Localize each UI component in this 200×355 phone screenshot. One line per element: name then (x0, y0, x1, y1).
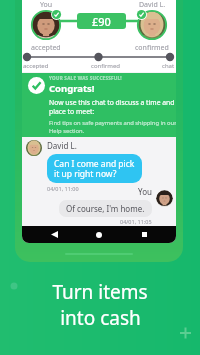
staticText: Turn items (52, 279, 148, 305)
staticText: chat (162, 62, 175, 70)
staticText: You (138, 186, 152, 197)
staticText: Congrats! (49, 82, 95, 95)
staticText: You (40, 0, 53, 10)
staticText: accepted (23, 62, 49, 70)
button[interactable]: Of course, I'm home. (66, 203, 145, 214)
button[interactable]: £90 (77, 13, 126, 29)
staticText: YOUR SALE WAS SUCCESSFUL! (49, 75, 122, 81)
staticText: 04/01, 11:00 (47, 185, 79, 192)
staticText: 04/01, 11:05 (120, 218, 152, 225)
staticText: confirmed (135, 43, 169, 53)
staticText: into cash (60, 305, 141, 331)
button[interactable]: Back (41, 226, 67, 243)
button[interactable]: Can I come and pick it up right now? (54, 158, 135, 179)
staticText: David L. (47, 140, 77, 151)
staticText: Find tips on safe payments and shipping … (49, 119, 176, 134)
staticText: Can I come and pick it up right now? (54, 158, 135, 179)
staticText: Now use this chat to discuss a time and … (49, 98, 175, 116)
button[interactable]: Home (86, 226, 112, 243)
staticText: accepted (31, 43, 61, 53)
staticText: £90 (92, 14, 111, 29)
button[interactable]: Recent apps (131, 226, 157, 243)
staticText: confirmed (91, 62, 120, 70)
staticText: Of course, I'm home. (66, 203, 145, 214)
staticText: David L. (139, 0, 166, 10)
